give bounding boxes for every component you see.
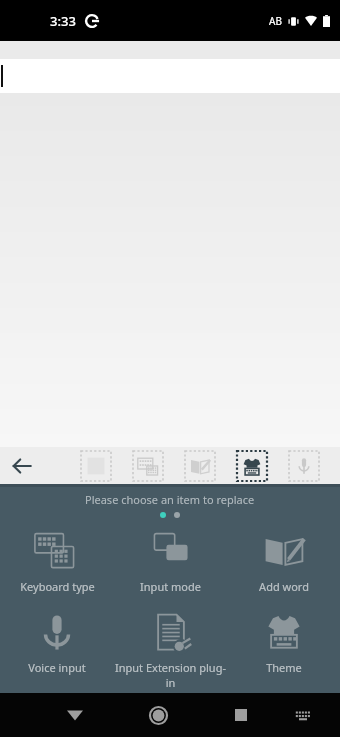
button[interactable]: Add word [184, 450, 216, 482]
button[interactable]: Back [55, 695, 95, 735]
button[interactable]: Add word [227, 527, 340, 596]
button[interactable]: Keyboard type [80, 450, 112, 482]
staticText: Voice input [28, 660, 86, 675]
button[interactable]: Theme [236, 450, 268, 482]
button[interactable]: Voice input [0, 608, 114, 677]
staticText: AB [269, 14, 282, 28]
button[interactable]: Switch keyboard [285, 697, 321, 733]
button[interactable]: Input mode [114, 527, 227, 596]
staticText: Keyboard type [20, 579, 95, 594]
staticText: Theme [266, 660, 302, 675]
button[interactable]: Input mode [132, 450, 164, 482]
button[interactable]: Theme [227, 608, 340, 677]
button[interactable]: Home [138, 695, 178, 735]
button[interactable]: Keyboard type [0, 527, 114, 596]
button[interactable]: Recents [221, 695, 261, 735]
staticText: Input Extension plug-in [114, 660, 227, 690]
button[interactable]: Input Extension plug-in [114, 608, 227, 692]
staticText: Please choose an item to replace [85, 492, 255, 507]
staticText: Add word [259, 579, 309, 594]
staticText: 3:33 [50, 12, 76, 30]
button[interactable]: Voice input [288, 450, 320, 482]
button[interactable]: Back [0, 447, 44, 484]
staticText: Input mode [140, 579, 201, 594]
